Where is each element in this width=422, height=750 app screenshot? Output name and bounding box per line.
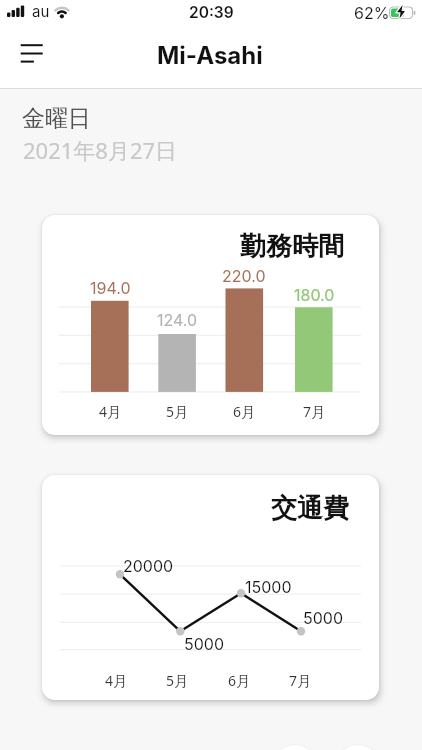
staticText: 7月	[289, 671, 312, 690]
staticText: 6月	[233, 402, 256, 421]
staticText: 180.0	[294, 285, 335, 304]
staticText: 20000	[123, 556, 174, 575]
staticText: 194.0	[90, 278, 131, 297]
button[interactable]	[8, 32, 56, 76]
staticText: 5月	[166, 402, 189, 421]
button[interactable]	[335, 745, 381, 750]
staticText: 124.0	[157, 310, 198, 329]
staticText: 20:39	[189, 3, 234, 22]
button[interactable]	[272, 745, 318, 750]
button[interactable]: 勤務時間	[42, 215, 379, 435]
staticText: 交通費	[271, 492, 349, 525]
staticText: Mi-Asahi	[157, 41, 263, 70]
staticText: 4月	[105, 671, 128, 690]
staticText: 金曜日	[22, 104, 91, 133]
staticText: au	[32, 2, 50, 20]
staticText: 7月	[303, 402, 326, 421]
staticText: 4月	[99, 402, 122, 421]
staticText: 220.0	[222, 266, 266, 285]
button[interactable]: 交通費	[42, 475, 379, 700]
staticText: 勤務時間	[240, 230, 344, 263]
staticText: 5000	[303, 608, 344, 627]
staticText: 5月	[166, 671, 189, 690]
staticText: 6月	[228, 671, 251, 690]
staticText: 2021年8月27日	[23, 135, 178, 165]
staticText: 15000	[245, 577, 292, 596]
staticText: 5000	[184, 634, 225, 653]
staticText: 62%	[354, 3, 390, 22]
